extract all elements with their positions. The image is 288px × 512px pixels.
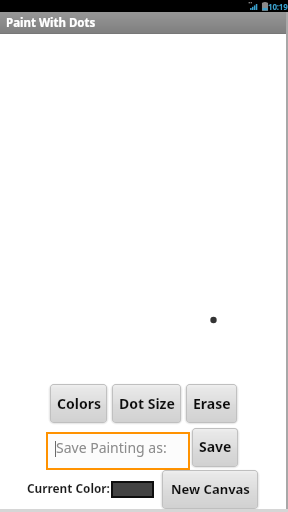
staticText: New Canvas bbox=[171, 480, 250, 498]
staticText: Save bbox=[199, 437, 232, 456]
button[interactable]: Save bbox=[193, 429, 237, 466]
button[interactable]: Dot Size bbox=[113, 385, 180, 422]
staticText: Colors bbox=[57, 394, 101, 413]
staticText: Current Color: bbox=[27, 480, 110, 496]
staticText: 10:19 bbox=[268, 1, 288, 12]
staticText: Paint With Dots bbox=[6, 15, 96, 31]
button[interactable]: Save Painting as: bbox=[46, 432, 190, 470]
button[interactable]: Erase bbox=[187, 385, 236, 422]
button[interactable]: Colors bbox=[51, 385, 106, 422]
button[interactable]: New Canvas bbox=[163, 471, 257, 508]
staticText: Erase bbox=[193, 394, 231, 413]
staticText: Save Painting as: bbox=[56, 438, 167, 457]
staticText: Dot Size bbox=[119, 394, 175, 413]
